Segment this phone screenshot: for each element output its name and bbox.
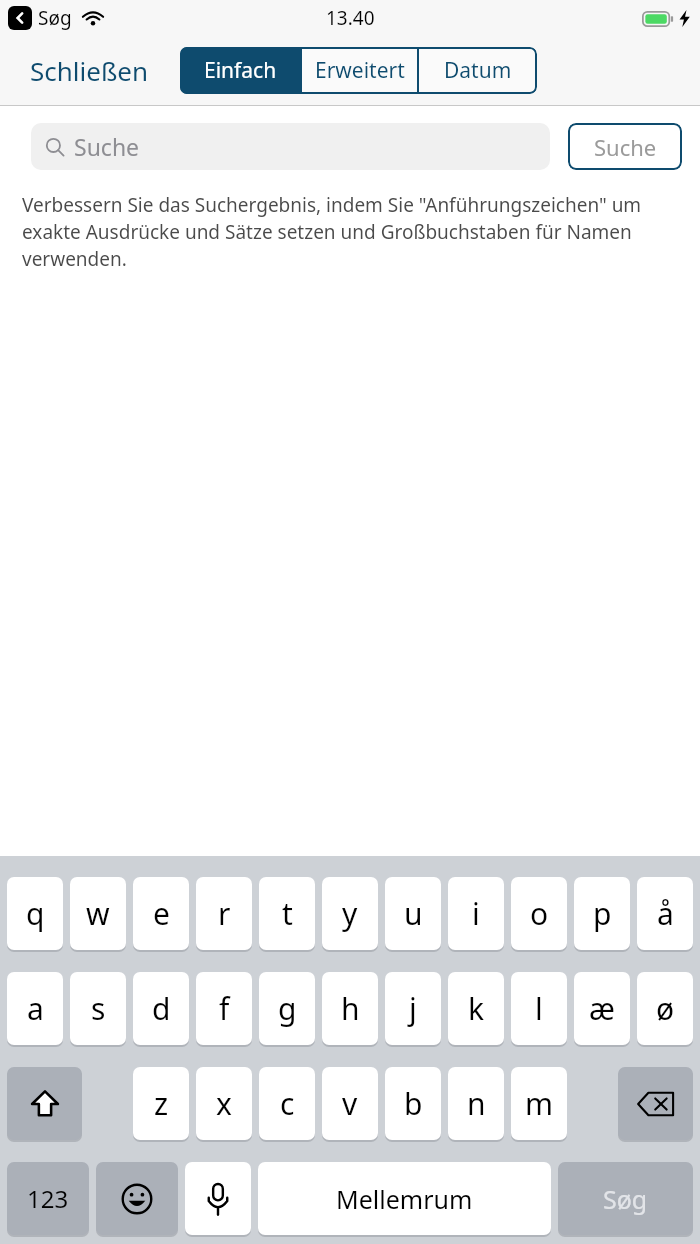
button[interactable]: Datum	[419, 47, 537, 94]
staticText: Søg	[38, 5, 72, 31]
staticText: y	[342, 893, 358, 934]
button[interactable]: Dictate	[185, 1162, 251, 1235]
staticText: Verbessern Sie das Suchergebnis, indem S…	[22, 192, 660, 272]
button[interactable]: Shift	[7, 1067, 82, 1140]
button[interactable]: Mellemrum	[258, 1162, 551, 1235]
button[interactable]: y	[322, 877, 378, 950]
staticText: c	[280, 1083, 295, 1124]
button[interactable]: w	[70, 877, 126, 950]
button[interactable]: b	[385, 1067, 441, 1140]
button[interactable]: i	[448, 877, 504, 950]
staticText: w	[86, 893, 110, 934]
button[interactable]: Suche	[31, 123, 550, 170]
staticText: p	[593, 893, 612, 934]
button[interactable]: t	[259, 877, 315, 950]
staticText: Erweitert	[315, 56, 405, 85]
button[interactable]: d	[133, 972, 189, 1045]
staticText: i	[472, 893, 480, 934]
button[interactable]: s	[70, 972, 126, 1045]
staticText: s	[91, 988, 106, 1029]
staticText: Søg	[603, 1182, 648, 1216]
button[interactable]: c	[259, 1067, 315, 1140]
staticText: n	[467, 1083, 486, 1124]
button[interactable]: æ	[574, 972, 630, 1045]
staticText: Datum	[444, 56, 512, 85]
button[interactable]: Erweitert	[302, 47, 417, 94]
button[interactable]: o	[511, 877, 567, 950]
button[interactable]: Backspace	[618, 1067, 693, 1140]
staticText: d	[152, 988, 171, 1029]
button[interactable]: n	[448, 1067, 504, 1140]
button[interactable]: f	[196, 972, 252, 1045]
staticText: h	[341, 988, 360, 1029]
button[interactable]: m	[511, 1067, 567, 1140]
staticText: k	[468, 988, 485, 1029]
button[interactable]: p	[574, 877, 630, 950]
button[interactable]: r	[196, 877, 252, 950]
staticText: å	[657, 893, 674, 934]
staticText: r	[218, 893, 231, 934]
staticText: e	[153, 893, 170, 934]
staticText: u	[404, 893, 423, 934]
staticText: o	[530, 893, 549, 934]
staticText: Suche	[74, 131, 140, 162]
staticText: ø	[656, 988, 675, 1029]
staticText: f	[219, 988, 230, 1029]
staticText: q	[26, 893, 45, 934]
button[interactable]: e	[133, 877, 189, 950]
staticText: Suche	[594, 132, 657, 162]
staticText: a	[27, 988, 44, 1029]
staticText: 123	[27, 1182, 69, 1215]
button[interactable]: v	[322, 1067, 378, 1140]
staticText: g	[278, 988, 297, 1029]
button[interactable]: h	[322, 972, 378, 1045]
button[interactable]: å	[637, 877, 693, 950]
button[interactable]: q	[7, 877, 63, 950]
button[interactable]: 123	[7, 1162, 89, 1235]
staticText: m	[525, 1083, 554, 1124]
button[interactable]: z	[133, 1067, 189, 1140]
button[interactable]: l	[511, 972, 567, 1045]
staticText: x	[216, 1083, 232, 1124]
button[interactable]: ø	[637, 972, 693, 1045]
button[interactable]: a	[7, 972, 63, 1045]
button[interactable]: x	[196, 1067, 252, 1140]
staticText: æ	[589, 988, 615, 1029]
button[interactable]: j	[385, 972, 441, 1045]
staticText: l	[535, 988, 543, 1029]
staticText: Schließen	[30, 53, 149, 88]
button[interactable]: Suche	[568, 123, 682, 170]
staticText: z	[154, 1083, 169, 1124]
button[interactable]: Einfach	[180, 47, 300, 94]
button[interactable]: k	[448, 972, 504, 1045]
button[interactable]: Schließen	[30, 53, 149, 88]
staticText: Einfach	[204, 56, 277, 85]
button[interactable]: u	[385, 877, 441, 950]
button[interactable]: Back	[8, 6, 32, 30]
button[interactable]: g	[259, 972, 315, 1045]
staticText: j	[409, 988, 417, 1029]
button[interactable]: Emoji	[96, 1162, 178, 1235]
button[interactable]: Søg	[558, 1162, 693, 1235]
staticText: v	[342, 1083, 358, 1124]
staticText: 13.40	[326, 5, 375, 31]
staticText: b	[404, 1083, 423, 1124]
staticText: t	[282, 893, 293, 934]
staticText: Mellemrum	[336, 1182, 473, 1216]
